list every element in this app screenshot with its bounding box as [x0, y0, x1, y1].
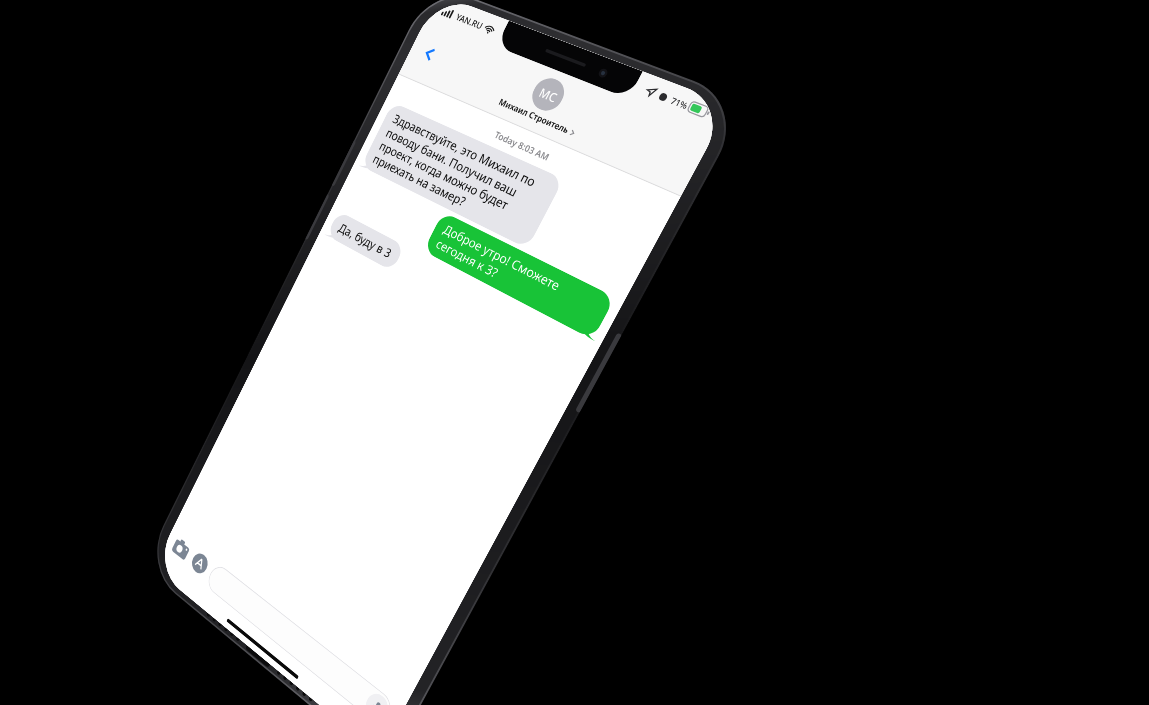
button[interactable]: App Store: [186, 546, 214, 581]
staticText: YAN.RU: [454, 10, 486, 31]
staticText: Доброе утро! Сможете сегодня к 3?: [434, 221, 603, 329]
button[interactable]: Да, буду в 3: [326, 211, 590, 371]
button[interactable]: Back: [409, 33, 450, 74]
staticText: Today 8:03 AM: [396, 85, 667, 214]
staticText: 71%: [669, 94, 690, 111]
button[interactable]: Доброе утро! Сможете сегодня к 3?: [340, 170, 615, 340]
button[interactable]: Record audio message: [204, 561, 396, 705]
staticText: МС: [536, 84, 561, 105]
staticText: Здравствуйте, это Михаил по поводу бани.…: [371, 110, 552, 239]
staticText: Михаил Строитель: [497, 96, 571, 136]
button[interactable]: Camera: [168, 531, 195, 566]
button[interactable]: Здравствуйте, это Михаил по поводу бани.…: [361, 102, 657, 293]
button[interactable]: Record audio message: [362, 689, 392, 705]
button[interactable]: МС: [497, 64, 595, 139]
staticText: Да, буду в 3: [336, 220, 395, 262]
